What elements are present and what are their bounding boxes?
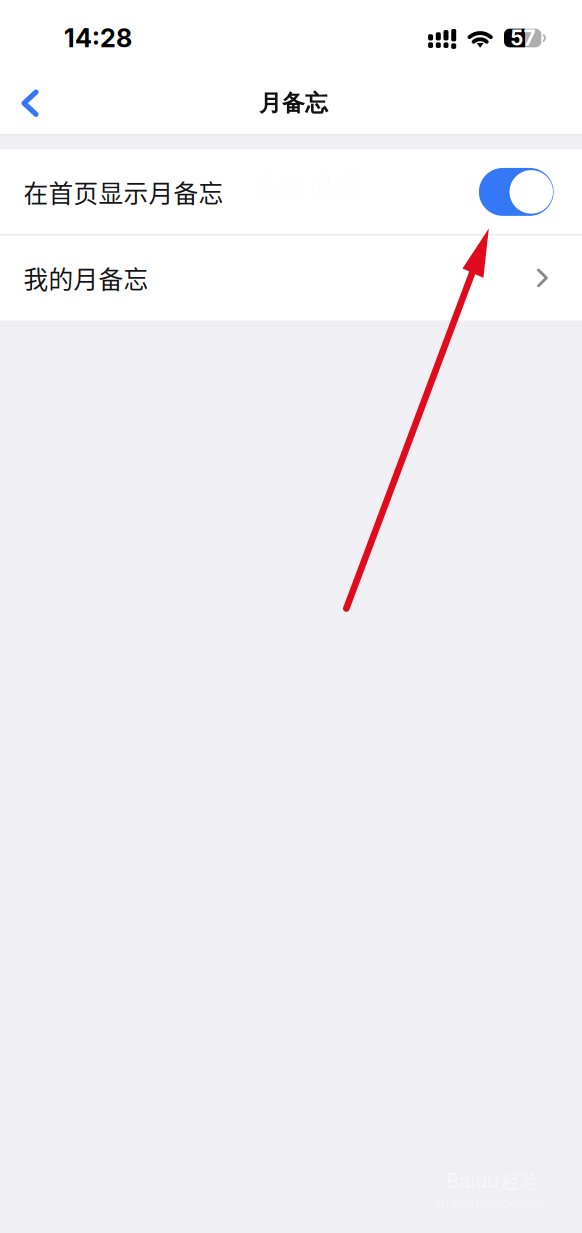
- staticText: 57: [510, 25, 535, 50]
- staticText: 在首页显示月备忘: [23, 174, 223, 210]
- staticText: 14:28: [64, 23, 132, 53]
- staticText: 月备忘: [259, 89, 328, 117]
- button[interactable]: 我的月备忘: [0, 235, 582, 320]
- button[interactable]: 在首页显示月备忘: [0, 149, 582, 234]
- button[interactable]: 返回: [0, 72, 60, 135]
- staticText: 我的月备忘: [23, 260, 148, 296]
